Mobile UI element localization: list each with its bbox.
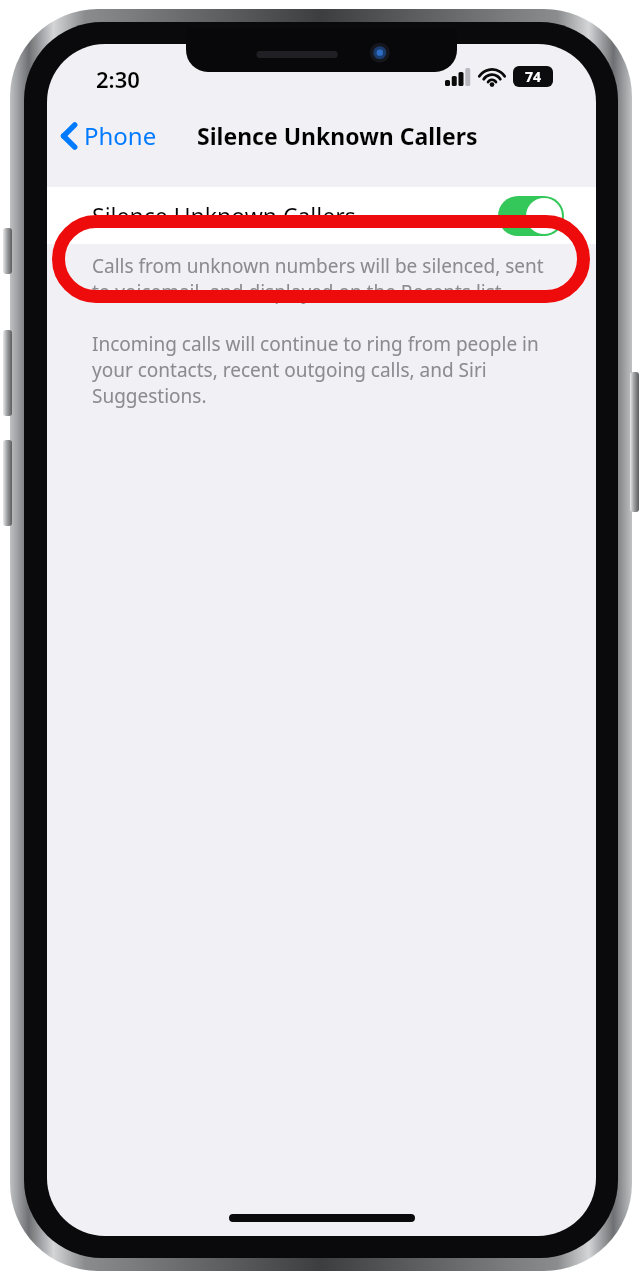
staticText: Silence Unknown Callers: [197, 120, 478, 151]
staticText: Silence Unknown Callers: [92, 200, 356, 231]
button[interactable]: Silence Unknown Callers: [47, 187, 596, 244]
staticText: Phone: [84, 119, 157, 152]
staticText: 74: [525, 67, 542, 86]
staticText: Incoming calls will continue to ring fro…: [92, 331, 560, 409]
staticText: 2:30: [96, 64, 140, 94]
staticText: Calls from unknown numbers will be silen…: [92, 253, 560, 305]
button[interactable]: Silence Unknown Callers toggle, on: [498, 196, 564, 236]
button[interactable]: Phone: [55, 113, 163, 158]
